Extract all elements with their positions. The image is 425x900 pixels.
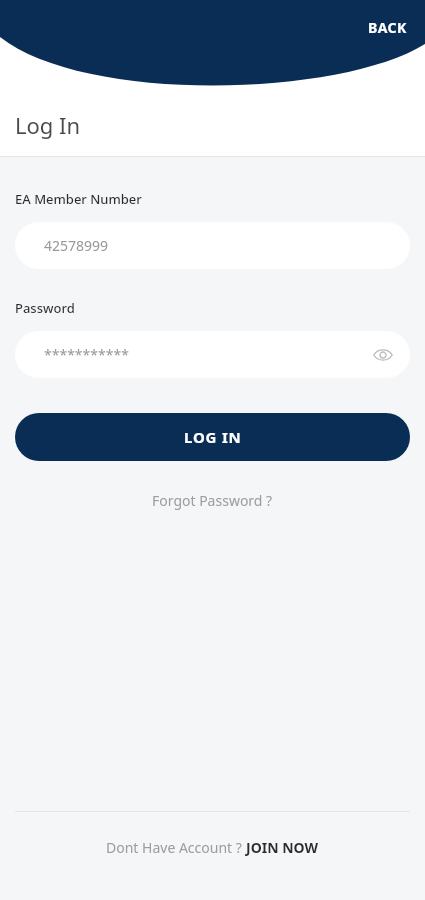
staticText: Forgot Password ? xyxy=(152,491,273,510)
button[interactable]: JOIN NOW xyxy=(246,838,319,857)
button[interactable]: *********** xyxy=(15,331,410,378)
button[interactable]: Forgot Password ? xyxy=(142,487,283,514)
staticText: LOG IN xyxy=(184,427,242,447)
staticText: EA Member Number xyxy=(15,190,142,208)
staticText: Dont Have Account ? xyxy=(106,838,246,857)
staticText: *********** xyxy=(44,345,129,364)
staticText: Password xyxy=(15,299,75,317)
button[interactable]: Show password xyxy=(370,342,396,368)
button[interactable]: 42578999 xyxy=(15,222,410,269)
staticText: BACK xyxy=(368,18,407,37)
staticText: 42578999 xyxy=(44,236,109,255)
button[interactable]: LOG IN xyxy=(15,413,410,461)
staticText: Log In xyxy=(15,110,81,140)
staticText: JOIN NOW xyxy=(246,838,319,857)
button[interactable]: BACK xyxy=(364,14,411,41)
